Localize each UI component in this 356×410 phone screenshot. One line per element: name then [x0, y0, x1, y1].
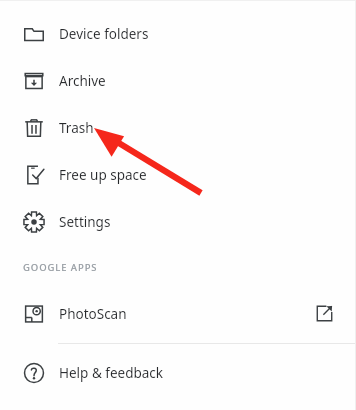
button[interactable]: Archive: [0, 57, 356, 104]
other: PhotoScan: [23, 303, 45, 325]
other: Free up space: [23, 164, 45, 186]
staticText: Device folders: [59, 25, 149, 43]
staticText: Settings: [59, 213, 111, 231]
button[interactable]: PhotoScan: [0, 290, 356, 337]
button[interactable]: Help and feedback: [0, 349, 356, 396]
other: Archive: [23, 70, 45, 92]
staticText: GOOGLE APPS: [23, 261, 98, 274]
other: Help and feedback: [23, 362, 45, 384]
button[interactable]: Device folders: [0, 10, 356, 57]
staticText: PhotoScan: [59, 305, 127, 323]
staticText: Free up space: [59, 166, 147, 184]
other: Settings: [23, 211, 45, 233]
staticText: Help & feedback: [59, 364, 164, 382]
staticText: Archive: [59, 72, 106, 90]
other: Device folders: [23, 23, 45, 45]
button[interactable]: Trash: [0, 104, 356, 151]
other: Open in new window: [315, 304, 334, 323]
other: Trash: [23, 117, 45, 139]
button[interactable]: Settings: [0, 198, 356, 245]
button[interactable]: Free up space: [0, 151, 356, 198]
staticText: Trash: [59, 119, 94, 137]
